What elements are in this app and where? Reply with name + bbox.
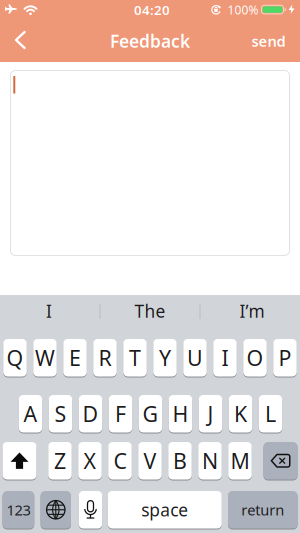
- button[interactable]: A: [19, 394, 42, 433]
- staticText: I: [46, 299, 52, 322]
- staticText: O: [246, 344, 263, 372]
- staticText: F: [115, 400, 126, 428]
- button[interactable]: F: [109, 394, 132, 433]
- button[interactable]: Delete: [263, 441, 297, 480]
- staticText: T: [129, 344, 141, 372]
- button[interactable]: S: [49, 394, 72, 433]
- button[interactable]: R: [93, 338, 117, 377]
- button[interactable]: N: [198, 441, 222, 480]
- button[interactable]: Z: [48, 441, 72, 480]
- staticText: R: [98, 344, 111, 372]
- staticText: V: [143, 447, 156, 475]
- button[interactable]: Space: [108, 490, 222, 529]
- button[interactable]: E: [63, 338, 87, 377]
- staticText: W: [35, 344, 55, 372]
- button[interactable]: Y: [153, 338, 177, 377]
- button[interactable]: G: [139, 394, 162, 433]
- staticText: L: [265, 400, 276, 428]
- staticText: 100%: [227, 2, 258, 18]
- staticText: K: [234, 400, 247, 428]
- staticText: 04:20: [134, 1, 170, 19]
- button[interactable]: send: [242, 21, 294, 61]
- staticText: space: [141, 498, 188, 521]
- staticText: H: [172, 400, 188, 428]
- button[interactable]: W: [33, 338, 57, 377]
- staticText: S: [54, 400, 66, 428]
- button[interactable]: O: [243, 338, 267, 377]
- button[interactable]: Q: [3, 338, 27, 377]
- staticText: I’m: [239, 299, 264, 322]
- staticText: Feedback: [110, 29, 190, 52]
- staticText: U: [187, 344, 203, 372]
- button[interactable]: U: [183, 338, 207, 377]
- staticText: The: [134, 299, 165, 322]
- button[interactable]: X: [78, 441, 102, 480]
- staticText: I: [221, 344, 228, 372]
- button[interactable]: Next keyboard: [41, 490, 71, 529]
- button[interactable]: P: [273, 338, 297, 377]
- staticText: send: [251, 31, 285, 51]
- button[interactable]: I: [213, 338, 237, 377]
- button[interactable]: D: [79, 394, 102, 433]
- button[interactable]: Numbers: [2, 490, 34, 529]
- staticText: X: [83, 447, 96, 475]
- staticText: E: [69, 344, 81, 372]
- staticText: 123: [6, 500, 30, 519]
- staticText: Q: [6, 344, 23, 372]
- staticText: P: [278, 344, 291, 372]
- button[interactable]: T: [123, 338, 147, 377]
- button[interactable]: The: [102, 294, 198, 328]
- button[interactable]: J: [199, 394, 222, 433]
- button[interactable]: M: [228, 441, 252, 480]
- staticText: M: [230, 447, 249, 475]
- button[interactable]: C: [108, 441, 132, 480]
- button[interactable]: B: [168, 441, 192, 480]
- staticText: Y: [159, 344, 171, 372]
- button[interactable]: K: [229, 394, 252, 433]
- button[interactable]: L: [259, 394, 282, 433]
- button[interactable]: V: [138, 441, 162, 480]
- staticText: D: [82, 400, 98, 428]
- staticText: A: [23, 400, 37, 428]
- staticText: N: [202, 447, 218, 475]
- button[interactable]: Return: [228, 490, 297, 529]
- button[interactable]: Shift: [2, 441, 36, 480]
- button[interactable]: Feedback text entry: [10, 70, 290, 256]
- staticText: B: [173, 447, 187, 475]
- button[interactable]: Dictate: [79, 490, 102, 529]
- staticText: return: [241, 500, 284, 519]
- staticText: J: [207, 400, 213, 428]
- button[interactable]: I: [1, 294, 97, 328]
- button[interactable]: I’m: [204, 294, 300, 328]
- staticText: Z: [54, 447, 66, 475]
- staticText: G: [142, 400, 158, 428]
- button[interactable]: Back: [4, 20, 38, 60]
- staticText: C: [113, 447, 126, 475]
- button[interactable]: H: [169, 394, 192, 433]
